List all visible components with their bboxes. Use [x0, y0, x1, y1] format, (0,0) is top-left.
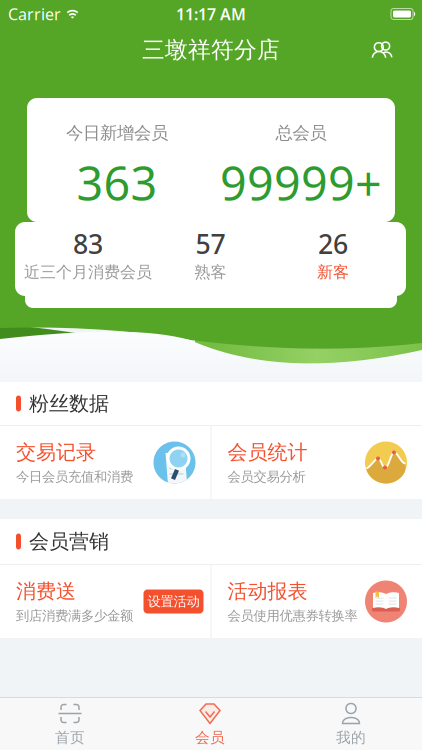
staticText: 设置活动: [147, 593, 199, 610]
staticText: Carrier: [8, 3, 61, 25]
staticText: 会员交易分析: [227, 469, 305, 485]
staticText: 交易记录: [16, 440, 96, 465]
staticText: 会员营销: [29, 529, 109, 554]
staticText: 总会员: [275, 122, 326, 144]
button[interactable]: 会员管理: [372, 40, 422, 59]
button[interactable]: 活动报表: [211, 565, 422, 638]
staticText: 我的: [336, 728, 366, 746]
staticText: 消费送: [16, 579, 76, 604]
staticText: 363: [76, 152, 157, 214]
staticText: 今日会员充值和消费: [16, 469, 133, 485]
staticText: 57: [195, 226, 225, 261]
button[interactable]: 我的: [280, 698, 422, 750]
staticText: 新客: [317, 262, 349, 282]
staticText: 三墩祥符分店: [142, 36, 280, 64]
staticText: 粉丝数据: [29, 391, 109, 416]
staticText: 99999+: [220, 152, 382, 214]
button[interactable]: 会员: [140, 698, 280, 750]
staticText: 首页: [55, 728, 85, 746]
staticText: 会员使用优惠券转换率: [227, 608, 357, 624]
button[interactable]: 设置活动: [143, 589, 203, 613]
button[interactable]: 交易记录: [0, 426, 210, 499]
staticText: 11:17 AM: [176, 3, 246, 25]
button[interactable]: 首页: [0, 698, 140, 750]
staticText: 26: [318, 226, 348, 261]
staticText: 83: [73, 226, 103, 261]
staticText: 熟客: [194, 262, 226, 282]
button[interactable]: 会员统计: [211, 426, 422, 499]
staticText: 会员: [195, 728, 225, 746]
staticText: 会员统计: [227, 440, 307, 465]
staticText: 今日新增会员: [66, 122, 168, 144]
staticText: 到店消费满多少金额: [16, 608, 133, 624]
staticText: 活动报表: [227, 579, 307, 604]
staticText: 近三个月消费会员: [24, 262, 152, 282]
